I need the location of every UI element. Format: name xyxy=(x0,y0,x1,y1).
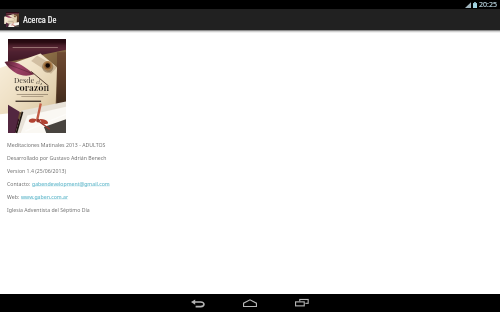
button[interactable]: Back xyxy=(183,294,213,312)
button[interactable]: gabendevelopment@gmail.com xyxy=(32,180,110,187)
staticText: Meditaciones Matinales 2013 - ADULTOS xyxy=(7,141,106,148)
staticText: Desarrollado por Gustavo Adrián Benech xyxy=(7,154,107,161)
button[interactable]: Recent apps xyxy=(287,294,317,312)
staticText: Acerca De xyxy=(23,15,57,25)
staticText: corazón xyxy=(15,81,50,93)
staticText: 20:25 xyxy=(479,0,497,9)
button[interactable]: Home xyxy=(235,294,265,312)
staticText: Desde xyxy=(14,75,35,85)
staticText: Version 1.4 (25/06/2013) xyxy=(7,167,66,174)
button[interactable]: www.gaben.com.ar xyxy=(21,193,69,200)
staticText: Web: xyxy=(7,193,21,200)
staticText: Contacto: xyxy=(7,180,32,187)
staticText: el xyxy=(35,78,40,85)
staticText: Iglesia Adventista del Séptimo Día xyxy=(7,206,90,213)
